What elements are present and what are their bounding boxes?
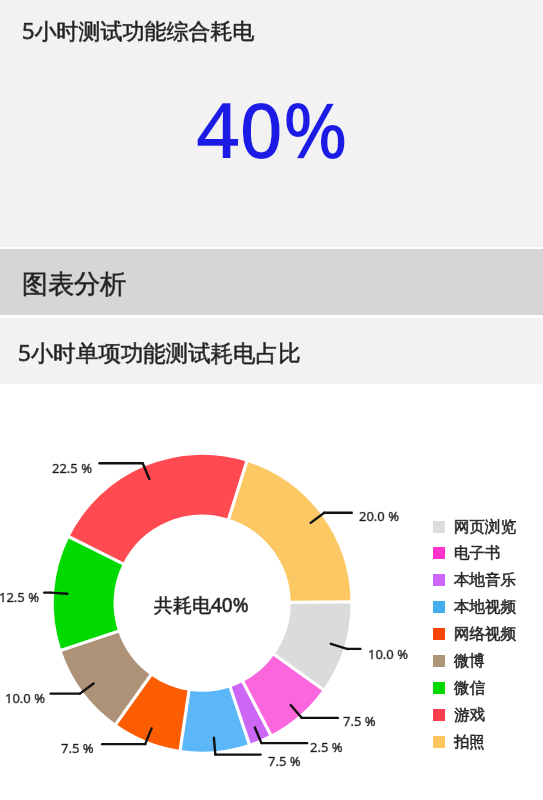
staticText: 22.5 % xyxy=(52,459,92,477)
staticText: 本地视频 xyxy=(454,597,516,617)
staticText: 12.5 % xyxy=(0,588,39,606)
staticText: 本地视频 xyxy=(454,597,516,617)
staticText: 共耗电40% xyxy=(154,592,249,618)
staticText: 7.5 % xyxy=(61,739,94,757)
staticText: 拍照 xyxy=(454,732,485,752)
staticText: 2.5 % xyxy=(310,738,343,756)
staticText: 20.0 % xyxy=(359,507,399,525)
staticText: 图表分析 xyxy=(22,268,126,301)
staticText: 7.5 % xyxy=(343,712,376,730)
button[interactable]: 拍照 xyxy=(433,732,485,752)
staticText: 40% xyxy=(196,77,348,181)
staticText: 游戏 xyxy=(454,705,485,725)
button[interactable]: 本地视频 xyxy=(433,597,516,617)
staticText: 共耗电40% xyxy=(154,592,249,618)
staticText: 5小时单项功能测试耗电占比 xyxy=(18,337,301,368)
staticText: 22.5 % xyxy=(52,459,92,477)
button[interactable]: 网页浏览 xyxy=(433,517,516,537)
button[interactable]: 电子书 xyxy=(433,543,501,563)
button[interactable]: 微博 xyxy=(433,651,485,671)
staticText: 7.5 % xyxy=(268,752,301,770)
staticText: 10.0 % xyxy=(5,689,45,707)
staticText: 图表分析 xyxy=(22,268,126,301)
staticText: 2.5 % xyxy=(310,738,343,756)
staticText: 本地音乐 xyxy=(454,570,516,590)
staticText: 5小时测试功能综合耗电 xyxy=(22,15,255,45)
staticText: 7.5 % xyxy=(268,752,301,770)
staticText: 10.0 % xyxy=(368,645,408,663)
staticText: 网络视频 xyxy=(454,624,516,644)
staticText: 游戏 xyxy=(454,705,485,725)
staticText: 网络视频 xyxy=(454,624,516,644)
button[interactable]: 游戏 xyxy=(433,705,485,725)
button[interactable]: 网络视频 xyxy=(433,624,516,644)
staticText: 20.0 % xyxy=(359,507,399,525)
staticText: 电子书 xyxy=(454,543,501,563)
staticText: 微博 xyxy=(454,651,485,671)
staticText: 本地音乐 xyxy=(454,570,516,590)
staticText: 7.5 % xyxy=(61,739,94,757)
staticText: 电子书 xyxy=(454,543,501,563)
staticText: 网页浏览 xyxy=(454,517,516,537)
staticText: 12.5 % xyxy=(0,588,39,606)
staticText: 5小时测试功能综合耗电 xyxy=(22,15,255,45)
staticText: 10.0 % xyxy=(368,645,408,663)
staticText: 微博 xyxy=(454,651,485,671)
staticText: 网页浏览 xyxy=(454,517,516,537)
button[interactable]: 本地音乐 xyxy=(433,570,516,590)
staticText: 10.0 % xyxy=(5,689,45,707)
staticText: 微信 xyxy=(454,678,485,698)
button[interactable]: 微信 xyxy=(433,678,485,698)
staticText: 5小时单项功能测试耗电占比 xyxy=(18,337,301,368)
staticText: 微信 xyxy=(454,678,485,698)
staticText: 7.5 % xyxy=(343,712,376,730)
staticText: 拍照 xyxy=(454,732,485,752)
